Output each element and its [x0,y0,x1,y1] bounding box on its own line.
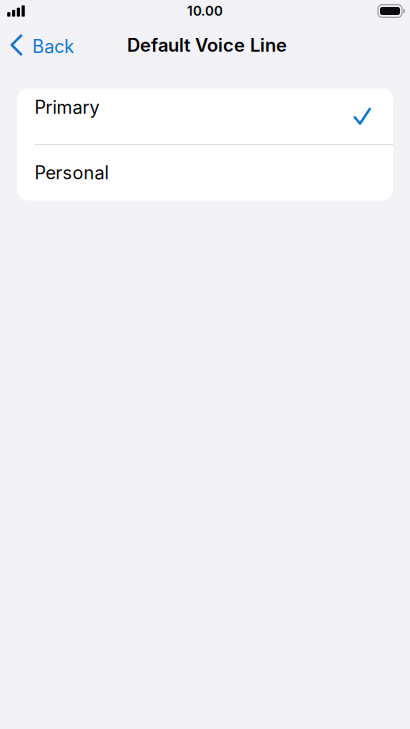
button[interactable]: Back [0,25,82,65]
staticText: Primary [35,96,100,118]
button[interactable]: Personal [17,145,393,200]
staticText: 10.00 [187,3,223,19]
button[interactable]: Primary [17,88,393,144]
staticText: Personal [35,162,109,184]
staticText: Back [32,36,74,57]
staticText: Default Voice Line [127,34,287,56]
